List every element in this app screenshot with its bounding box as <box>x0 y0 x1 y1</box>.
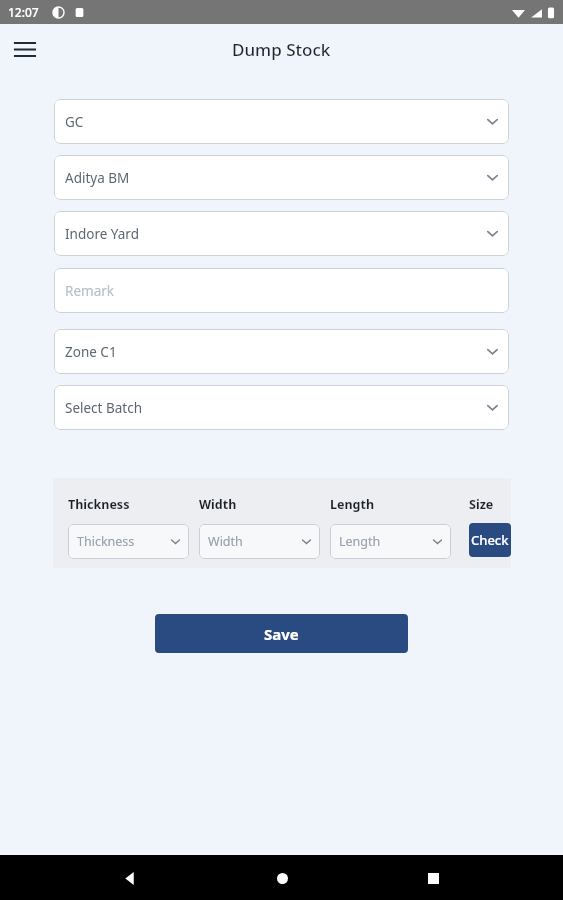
staticText: Thickness <box>77 533 135 550</box>
button[interactable]: Check <box>469 523 511 557</box>
staticText: Save <box>264 624 299 644</box>
staticText: Width <box>208 533 243 550</box>
button[interactable]: Open navigation menu <box>6 30 44 68</box>
button[interactable]: Remark <box>54 268 509 313</box>
staticText: Select Batch <box>65 399 143 417</box>
staticText: Aditya BM <box>65 169 130 187</box>
staticText: Thickness <box>68 496 130 513</box>
button[interactable]: Thickness <box>68 524 189 559</box>
button[interactable]: Length <box>330 524 451 559</box>
staticText: Length <box>339 533 381 550</box>
staticText: Remark <box>65 282 114 300</box>
button[interactable]: Select Batch <box>54 385 509 430</box>
staticText: GC <box>65 113 84 131</box>
button[interactable]: Width <box>199 524 320 559</box>
staticText: Size <box>469 496 494 513</box>
staticText: Indore Yard <box>65 225 139 243</box>
button[interactable]: Home <box>260 856 304 900</box>
staticText: Dump Stock <box>232 38 331 61</box>
button[interactable]: Indore Yard <box>54 211 509 256</box>
staticText: Check <box>471 531 509 549</box>
button[interactable]: Recent apps <box>411 856 455 900</box>
button[interactable]: Back <box>108 856 152 900</box>
button[interactable]: Aditya BM <box>54 155 509 200</box>
button[interactable]: Save <box>155 614 408 653</box>
button[interactable]: Zone C1 <box>54 329 509 374</box>
button[interactable]: GC <box>54 99 509 144</box>
staticText: 12:07 <box>8 4 39 20</box>
staticText: Length <box>330 496 375 513</box>
staticText: Width <box>199 496 237 513</box>
staticText: Zone C1 <box>65 343 117 361</box>
